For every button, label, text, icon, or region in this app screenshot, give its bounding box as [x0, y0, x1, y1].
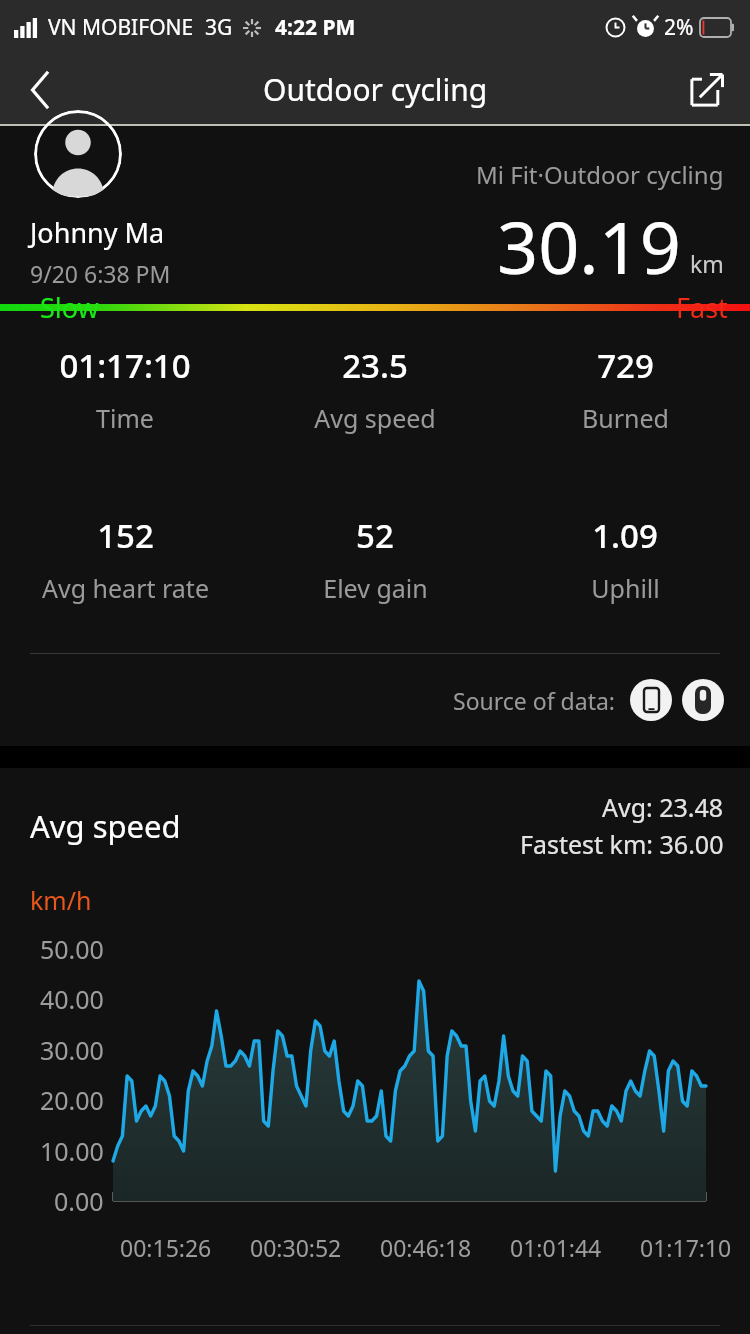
- staticText: Source of data:: [453, 685, 616, 716]
- button[interactable]: 01:17:10: [0, 343, 250, 435]
- button[interactable]: Back: [10, 60, 70, 120]
- staticText: 00:46:18: [380, 1232, 472, 1263]
- staticText: 00:30:52: [250, 1232, 342, 1263]
- staticText: 01:01:44: [510, 1232, 602, 1263]
- button[interactable]: 152: [0, 513, 250, 605]
- staticText: Uphill: [591, 571, 660, 605]
- button[interactable]: 52: [250, 513, 500, 605]
- button[interactable]: Share: [678, 61, 736, 119]
- staticText: Avg heart rate: [42, 571, 209, 605]
- staticText: 30.19: [497, 197, 682, 289]
- staticText: 10.00: [40, 1134, 104, 1168]
- staticText: 52: [356, 513, 394, 558]
- button[interactable]: 729: [500, 343, 750, 435]
- staticText: 20.00: [40, 1083, 104, 1117]
- button[interactable]: Band source: [682, 679, 724, 721]
- staticText: 729: [597, 343, 654, 388]
- staticText: 23.5: [342, 343, 408, 388]
- staticText: 40.00: [40, 982, 104, 1016]
- staticText: Elev gain: [323, 571, 428, 605]
- staticText: 4:22 PM: [275, 13, 356, 42]
- staticText: 30.00: [40, 1033, 104, 1067]
- staticText: Johnny Ma: [30, 214, 165, 251]
- staticText: 152: [97, 513, 154, 558]
- staticText: 00:15:26: [120, 1232, 212, 1263]
- staticText: Outdoor cycling: [263, 69, 488, 110]
- staticText: VN MOBIFONE: [48, 13, 194, 42]
- button[interactable]: 23.5: [250, 343, 500, 435]
- staticText: 9/20 6:38 PM: [30, 258, 171, 289]
- staticText: Time: [96, 401, 154, 435]
- staticText: 0.00: [54, 1184, 104, 1218]
- staticText: Mi Fit·Outdoor cycling: [476, 158, 724, 191]
- staticText: km: [690, 248, 724, 279]
- staticText: Slow: [40, 289, 99, 325]
- staticText: Fast: [676, 289, 728, 325]
- button[interactable]: Phone source: [630, 679, 672, 721]
- staticText: Avg speed: [30, 805, 181, 847]
- button[interactable]: 1.09: [500, 513, 750, 605]
- staticText: Avg speed: [314, 401, 436, 435]
- staticText: 1.09: [592, 513, 658, 558]
- staticText: Fastest km: 36.00: [520, 827, 724, 861]
- staticText: Burned: [582, 401, 669, 435]
- staticText: 2%: [664, 13, 694, 42]
- staticText: 50.00: [40, 932, 104, 966]
- staticText: Avg: 23.48: [602, 790, 724, 824]
- staticText: 01:17:10: [640, 1232, 732, 1263]
- staticText: 3G: [205, 13, 233, 42]
- staticText: 01:17:10: [59, 343, 191, 388]
- button[interactable]: [34, 110, 122, 198]
- staticText: km/h: [30, 883, 92, 917]
